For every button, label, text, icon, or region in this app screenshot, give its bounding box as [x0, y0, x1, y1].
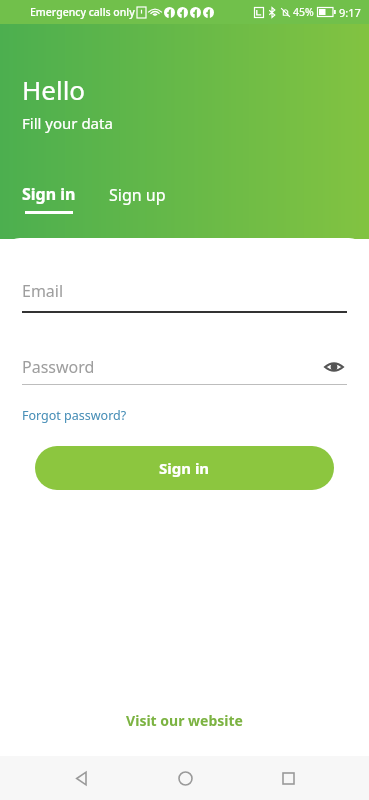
- button[interactable]: Sign in: [22, 183, 76, 214]
- staticText: 45%: [293, 5, 314, 19]
- staticText: Emergency calls only: [30, 5, 135, 19]
- button[interactable]: Sign in: [35, 446, 334, 490]
- staticText: Password: [22, 356, 321, 378]
- staticText: Visit our website: [126, 711, 243, 730]
- button[interactable]: Visit our website: [0, 711, 369, 730]
- staticText: Sign in: [22, 183, 76, 205]
- button[interactable]: Home: [163, 756, 207, 800]
- staticText: Sign in: [159, 458, 210, 478]
- button[interactable]: Forgot password?: [22, 407, 127, 424]
- staticText: 9:17: [339, 5, 361, 20]
- button[interactable]: Password: [22, 354, 347, 385]
- staticText: Fill your data: [22, 113, 113, 133]
- staticText: Sign up: [109, 184, 166, 206]
- staticText: Hello: [22, 72, 86, 107]
- staticText: Email: [22, 280, 64, 302]
- button[interactable]: Recents: [266, 756, 310, 800]
- button[interactable]: Show password: [321, 354, 347, 380]
- staticText: Forgot password?: [22, 407, 127, 424]
- button[interactable]: Email: [22, 280, 347, 313]
- button[interactable]: Back: [59, 756, 103, 800]
- button[interactable]: Sign up: [109, 184, 166, 214]
